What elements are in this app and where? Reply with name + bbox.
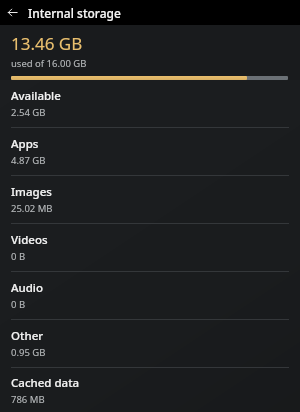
staticText: Videos bbox=[11, 232, 48, 248]
staticText: Cached data bbox=[11, 375, 80, 391]
staticText: 13.46 GB bbox=[11, 32, 83, 55]
button[interactable]: Audio bbox=[0, 272, 300, 319]
staticText: Available bbox=[11, 88, 61, 104]
staticText: 25.02 MB bbox=[11, 202, 53, 215]
staticText: 4.87 GB bbox=[11, 154, 46, 167]
staticText: 0 B bbox=[11, 298, 26, 311]
staticText: Apps bbox=[11, 136, 39, 152]
staticText: 786 MB bbox=[11, 393, 45, 406]
staticText: Images bbox=[11, 184, 52, 200]
button[interactable]: Back bbox=[0, 0, 25, 25]
staticText: 2.54 GB bbox=[11, 106, 46, 119]
staticText: Other bbox=[11, 328, 44, 344]
staticText: Internal storage bbox=[28, 5, 121, 21]
button[interactable]: Cached data bbox=[0, 368, 300, 412]
button[interactable]: Other bbox=[0, 320, 300, 367]
button[interactable]: Available bbox=[0, 80, 300, 127]
staticText: Audio bbox=[11, 280, 44, 296]
button[interactable]: Apps bbox=[0, 128, 300, 175]
staticText: used of 16.00 GB bbox=[11, 57, 87, 70]
staticText: 0 B bbox=[11, 250, 26, 263]
button[interactable]: Images bbox=[0, 176, 300, 223]
staticText: 0.95 GB bbox=[11, 346, 46, 359]
button[interactable]: Videos bbox=[0, 224, 300, 271]
